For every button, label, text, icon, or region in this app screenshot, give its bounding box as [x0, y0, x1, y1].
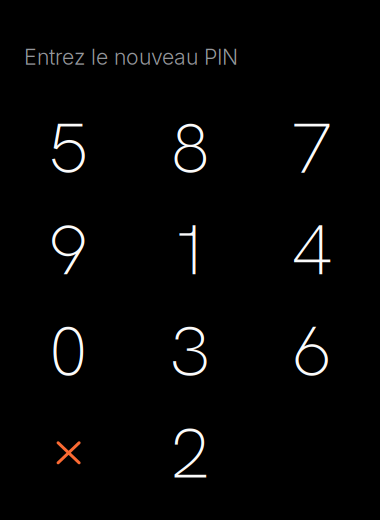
button[interactable]: 9 — [8, 199, 129, 300]
button[interactable]: 5 — [8, 97, 129, 199]
staticText: 8 — [170, 102, 210, 194]
button[interactable]: Clear — [8, 402, 129, 504]
staticText: 3 — [170, 305, 210, 397]
staticText: 6 — [292, 305, 332, 397]
staticText: Entrez le nouveau PIN — [24, 44, 238, 70]
staticText: 9 — [49, 204, 89, 296]
button[interactable]: 1 — [129, 199, 251, 300]
button[interactable]: 0 — [8, 300, 129, 402]
button[interactable]: 8 — [129, 97, 251, 199]
button[interactable]: 3 — [129, 300, 251, 402]
button[interactable]: 4 — [251, 199, 373, 300]
staticText: 0 — [49, 305, 89, 397]
button[interactable]: 7 — [251, 97, 373, 199]
button[interactable]: 2 — [129, 402, 251, 504]
staticText: 1 — [170, 204, 210, 296]
staticText: 7 — [292, 102, 332, 194]
button[interactable]: 6 — [251, 300, 373, 402]
staticText: 5 — [49, 102, 89, 194]
staticText: 4 — [292, 204, 332, 296]
staticText: 2 — [170, 407, 210, 499]
